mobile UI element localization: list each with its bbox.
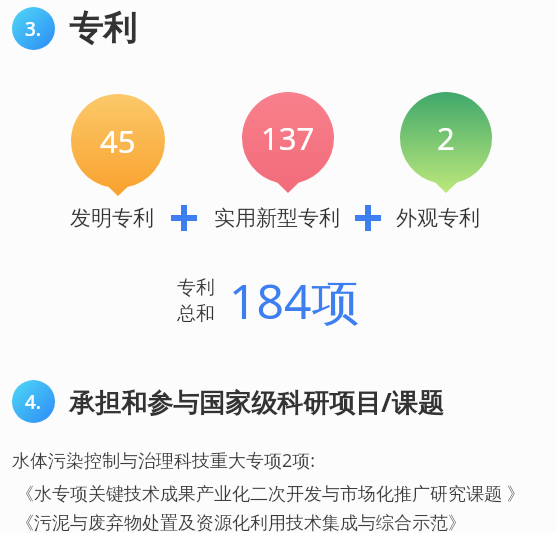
button[interactable]: Section 4: [12, 380, 55, 423]
staticText: 总和: [177, 302, 215, 326]
staticText: 承担和参与国家级科研项目/课题: [69, 384, 444, 420]
button[interactable]: Section 4: [12, 380, 444, 423]
staticText: 184项: [229, 268, 360, 334]
staticText: 4.: [25, 389, 42, 415]
button[interactable]: Section 3: [12, 7, 137, 50]
staticText: 3.: [25, 16, 42, 42]
staticText: 《污泥与废弃物处置及资源化利用技术集成与综合示范》: [16, 512, 466, 533]
staticText: 《水专项关键技术成果产业化二次开发与市场化推广研究课题 》: [16, 481, 525, 506]
staticText: 专利: [69, 7, 137, 50]
staticText: 水体污染控制与治理科技重大专项2项:: [12, 448, 316, 473]
staticText: 2: [437, 117, 455, 159]
button[interactable]: Section 3: [12, 7, 55, 50]
staticText: 45: [100, 120, 136, 162]
staticText: 发明专利: [70, 205, 154, 231]
staticText: 实用新型专利: [214, 205, 340, 231]
staticText: 专利: [177, 276, 215, 300]
staticText: 137: [261, 117, 315, 159]
staticText: 外观专利: [396, 205, 480, 231]
